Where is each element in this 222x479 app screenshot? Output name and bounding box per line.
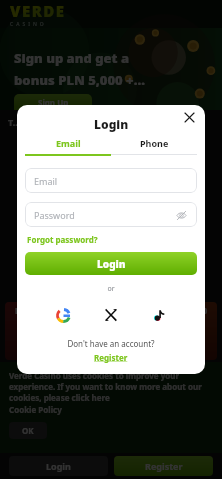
staticText: Email [56,137,81,149]
staticText: Don't have an account? [17,338,205,349]
staticText: CASINO [10,21,47,28]
button[interactable]: OK [9,422,47,439]
staticText: Hell Hot 100 [159,305,208,316]
button[interactable]: Close [181,109,198,126]
button[interactable]: Sign in with X [98,302,124,328]
staticText: OK [22,425,34,436]
staticText: Login [97,257,126,271]
staticText: Sign up and get a [14,49,130,67]
button[interactable]: Login [9,456,108,476]
staticText: T... [8,116,21,128]
button[interactable]: Email [25,137,111,156]
staticText: Password [34,209,75,221]
button[interactable]: Register [114,456,213,476]
staticText: or [17,284,205,294]
button[interactable]: Password [25,202,197,227]
staticText: VERDE [10,1,66,21]
button[interactable]: Hell Hot 100 [150,302,217,360]
staticText: Login [94,116,129,132]
button[interactable]: Register [94,352,128,363]
button[interactable]: Email [25,168,197,193]
staticText: Lucky Stre... [15,305,64,316]
staticText: Login [46,460,71,472]
button[interactable]: Cookie Policy [9,404,62,415]
staticText: Verde Casino uses cookies to improve you… [9,370,213,403]
button[interactable]: Lucky Stre... [5,302,73,360]
button[interactable]: Sign in with Google [50,302,76,328]
button[interactable]: Phone [111,137,197,155]
button[interactable]: Sign in with TikTok [146,302,172,328]
button[interactable]: Login [25,252,197,275]
staticText: Register [145,460,183,472]
staticText: Phone [140,137,169,149]
staticText: bonus PLN 5,000 +... [14,71,145,89]
button[interactable]: Sign Up [14,94,92,110]
button[interactable]: Break the ... [78,302,145,360]
button[interactable]: Show password [174,208,188,222]
staticText: Sign Up [38,97,69,108]
staticText: Email [34,175,58,187]
staticText: Break the ... [88,305,136,316]
button[interactable]: Forgot password? [27,234,98,245]
